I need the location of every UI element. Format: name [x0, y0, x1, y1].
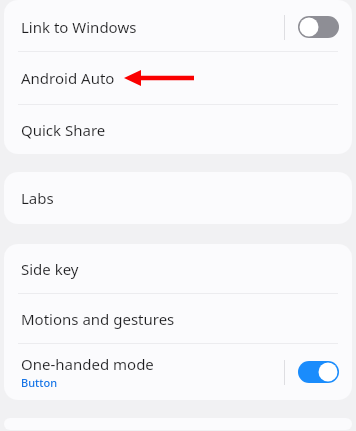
button[interactable]: Labs [4, 172, 352, 224]
button[interactable]: One-handed mode [4, 344, 352, 400]
button[interactable]: Android Auto [4, 52, 352, 104]
button[interactable]: Motions and gestures [4, 294, 352, 343]
staticText: Quick Share [21, 120, 106, 140]
button[interactable]: Link to Windows off [298, 10, 339, 44]
staticText: One-handed mode [21, 354, 154, 374]
button[interactable]: One-handed mode on [298, 355, 339, 389]
staticText: Motions and gestures [21, 309, 175, 329]
button[interactable]: Quick Share [4, 105, 352, 154]
button[interactable]: Link to Windows [4, 2, 352, 51]
staticText: Button [21, 375, 58, 390]
staticText: Side key [21, 259, 79, 279]
staticText: Link to Windows [21, 17, 137, 37]
button[interactable]: Side key [4, 244, 352, 293]
staticText: Android Auto [21, 68, 115, 88]
staticText: Labs [21, 188, 54, 208]
